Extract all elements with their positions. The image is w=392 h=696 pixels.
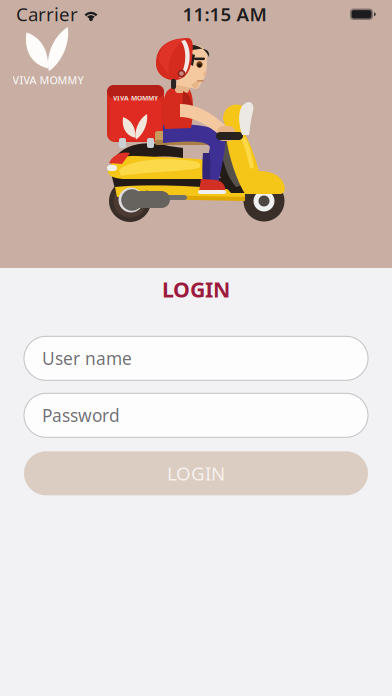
staticText: VIVA MOMMY [113,94,158,102]
staticText: LOGIN [162,275,230,303]
staticText: VIVA MOMMY [12,73,83,87]
button[interactable]: User name [24,336,368,380]
staticText: Carrier [16,2,78,26]
button[interactable]: Password [24,393,368,437]
button[interactable]: LOGIN [24,451,368,495]
button[interactable]: LOGIN [162,275,230,303]
staticText: LOGIN [167,461,225,486]
staticText: 11:15 AM [182,2,266,26]
staticText: User name [42,347,132,370]
staticText: Password [42,404,120,427]
